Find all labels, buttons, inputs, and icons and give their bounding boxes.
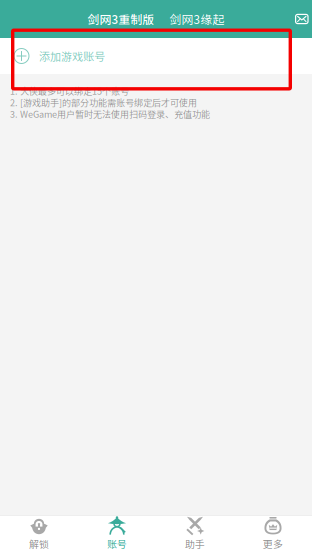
button[interactable]: 剑网3重制版 [81,5,160,32]
button[interactable]: 账号 [78,511,156,551]
staticText: 剑网3缘起 [169,10,224,27]
staticText: 账号 [107,537,127,551]
staticText: 剑网3重制版 [87,10,154,27]
staticText: 添加游戏账号 [39,48,105,64]
button[interactable]: 添加游戏账号 [0,38,312,74]
button[interactable]: 剑网3缘起 [163,5,230,32]
staticText: 更多 [263,537,283,551]
button[interactable]: 助手 [156,511,234,551]
staticText: 3. WeGame用户暂时无法使用扫码登录、充值功能 [10,107,210,120]
button[interactable]: Messages [286,5,312,33]
staticText: 助手 [185,537,205,551]
button[interactable]: 更多 [234,511,312,551]
staticText: 1. 大侠最多可以绑定15个账号 [10,84,129,97]
staticText: 解锁 [29,537,49,551]
staticText: 2. [游戏助手]的部分功能需账号绑定后才可使用 [10,96,197,109]
button[interactable]: 解锁 [0,511,78,551]
